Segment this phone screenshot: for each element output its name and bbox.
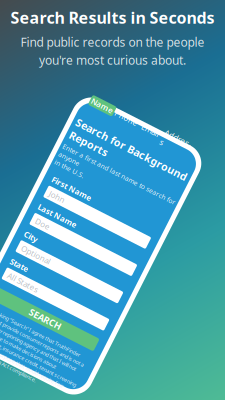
button[interactable]: SEARCH	[25, 321, 140, 335]
staticText: Phone	[51, 107, 76, 117]
staticText: you're most curious about.	[39, 52, 186, 68]
staticText: First Name	[25, 194, 69, 205]
staticText: Find public records on the people	[20, 34, 204, 50]
staticText: Last Name	[25, 225, 68, 236]
staticText: By clicking "Search" I agree that TruthF…	[25, 341, 140, 391]
staticText: Address	[104, 101, 134, 123]
staticText: Optional	[29, 270, 61, 280]
staticText: All States	[29, 300, 63, 311]
staticText: State	[25, 286, 45, 297]
staticText: City	[25, 256, 40, 266]
staticText: SEARCH	[65, 322, 100, 334]
staticText: Enter a first and last name to search fo…	[19, 161, 145, 188]
staticText: Email	[81, 107, 100, 117]
staticText: Search for Background Reports	[20, 131, 144, 159]
staticText: Doe	[29, 239, 45, 250]
staticText: Search Results in Seconds	[10, 7, 214, 28]
staticText: John	[29, 208, 46, 219]
